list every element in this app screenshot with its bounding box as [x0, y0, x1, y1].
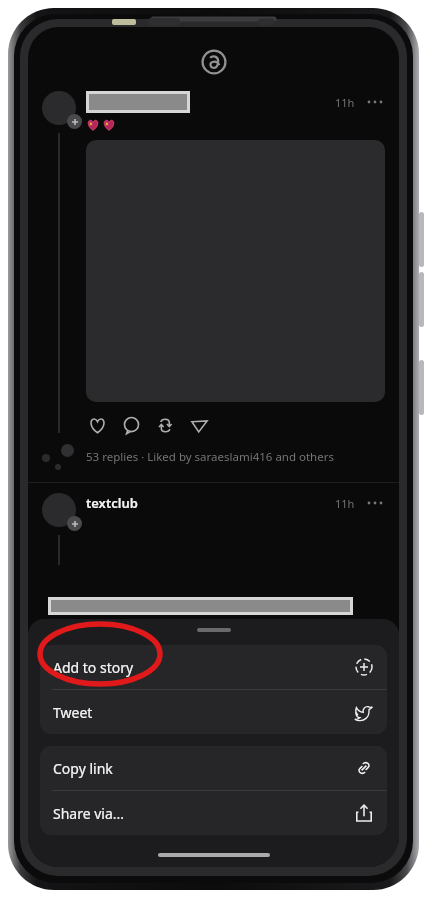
staticText: Copy link [53, 759, 113, 778]
button[interactable]: Repost [154, 414, 176, 436]
staticText: 11h [335, 496, 355, 511]
button[interactable]: Tweet [40, 690, 387, 734]
button[interactable]: More options [365, 92, 385, 112]
staticText: Tweet [53, 703, 93, 722]
staticText: 53 replies · Liked by saraeslami416 and … [86, 449, 334, 465]
staticText: 11h [335, 95, 355, 110]
button[interactable]: Copy link [40, 746, 387, 790]
button[interactable]: Add to story [40, 645, 387, 689]
staticText: textclub [86, 494, 138, 512]
button[interactable]: Share via... [40, 791, 387, 835]
button[interactable]: Reply [120, 414, 142, 436]
staticText: Add to story [53, 658, 134, 677]
button[interactable]: More options [365, 493, 385, 513]
staticText: Share via... [53, 804, 125, 823]
button[interactable]: Share [188, 414, 210, 436]
button[interactable]: Like [86, 414, 108, 436]
